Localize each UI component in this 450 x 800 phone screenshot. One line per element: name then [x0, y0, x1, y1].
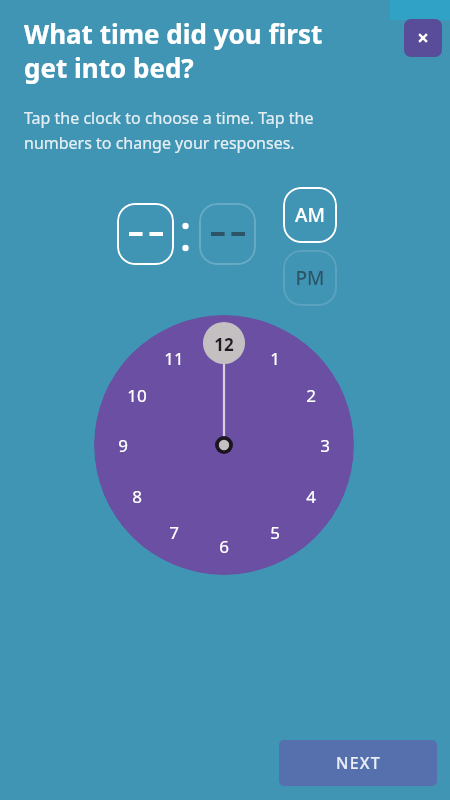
staticText: AM	[295, 202, 325, 228]
staticText: 9	[118, 434, 128, 457]
button[interactable]: 9	[109, 432, 137, 458]
staticText: PM	[295, 265, 325, 291]
staticText: 12	[214, 333, 234, 356]
staticText: 5	[270, 521, 280, 544]
staticText: Tap the clock to choose a time. Tap the …	[24, 107, 314, 153]
button[interactable]: Clock face	[94, 315, 354, 575]
button[interactable]: 2	[297, 382, 325, 408]
button[interactable]	[199, 203, 256, 265]
button[interactable]	[117, 203, 174, 265]
button[interactable]: PM	[283, 250, 337, 306]
staticText: 4	[306, 485, 316, 508]
button[interactable]: Close	[404, 19, 442, 57]
button[interactable]: 8	[123, 483, 151, 509]
staticText: 10	[127, 384, 147, 407]
button[interactable]: 3	[311, 432, 339, 458]
staticText: 7	[169, 521, 179, 544]
staticText: 3	[320, 434, 330, 457]
staticText: 11	[164, 347, 184, 370]
button[interactable]: 12	[210, 331, 238, 357]
staticText: 6	[219, 535, 229, 558]
button[interactable]: NEXT	[279, 740, 437, 786]
button[interactable]: 10	[123, 382, 151, 408]
button[interactable]: AM	[283, 187, 337, 243]
staticText: 1	[270, 347, 280, 370]
button[interactable]: 7	[160, 519, 188, 545]
staticText: NEXT	[336, 752, 381, 774]
staticText: 2	[306, 384, 316, 407]
button[interactable]: 4	[297, 483, 325, 509]
button[interactable]: 11	[160, 345, 188, 371]
button[interactable]: 1	[261, 345, 289, 371]
button[interactable]: 5	[261, 519, 289, 545]
staticText: 8	[132, 485, 142, 508]
staticText: What time did you first get into bed?	[24, 16, 323, 85]
button[interactable]: 6	[210, 533, 238, 559]
